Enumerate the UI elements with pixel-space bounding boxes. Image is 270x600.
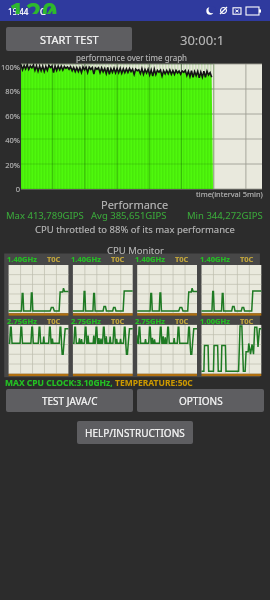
staticText: 1.40GHz [135,254,165,264]
staticText: T0C [47,254,61,264]
staticText: 0 [0,184,20,194]
button[interactable]: TEST JAVA/C [6,389,133,412]
staticText: Max 413,789GIPS [6,209,84,222]
staticText: Avg 385,651GIPS [91,209,167,222]
staticText: 1.40GHz [7,254,37,264]
staticText: OPTIONS [179,394,223,408]
staticText: TEST JAVA/C [42,394,98,408]
button[interactable]: HELP/INSTRUCTIONS [77,421,193,444]
staticText: MAX CPU CLOCK:3.10GHz, [5,377,115,389]
staticText: 120 [9,0,58,14]
staticText: G [40,6,46,17]
staticText: 30:00:1 [180,31,225,49]
staticText: time(interval 5min) [196,189,263,199]
button[interactable]: OPTIONS [137,389,264,412]
staticText: Min 344,272GIPS [187,209,263,222]
staticText: START TEST [40,32,99,47]
staticText: 2.75GHz [71,316,101,326]
staticText: 1.40GHz [71,254,101,264]
staticText: 1.00GHz [200,316,230,326]
staticText: 1.40GHz [200,254,230,264]
staticText: 100% [0,62,20,72]
staticText: CPU throttled to 88% of its max performa… [35,223,235,236]
staticText: 15:44 [8,6,29,17]
staticText: 2.75GHz [7,316,37,326]
staticText: 2.75GHz [135,316,165,326]
staticText: 40% [0,135,20,145]
staticText: HELP/INSTRUCTIONS [85,426,185,440]
staticText: T0C [47,316,61,326]
staticText: T0C [240,254,254,264]
staticText: T0C [240,316,254,326]
staticText: performance over time graph [76,52,188,63]
button[interactable]: START TEST [6,27,132,51]
staticText: T0C [111,316,125,326]
staticText: TEMPERATURE:50C [115,377,193,389]
staticText: 20% [0,160,20,170]
staticText: CPU Monitor [107,244,164,257]
staticText: T0C [175,254,189,264]
staticText: T0C [111,254,125,264]
staticText: 80% [0,86,20,96]
staticText: 60% [0,111,20,121]
staticText: Performance [101,197,169,212]
staticText: T0C [175,316,189,326]
